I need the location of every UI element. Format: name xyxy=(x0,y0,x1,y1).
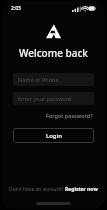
button[interactable]: Forgot password? xyxy=(45,111,94,120)
other: App logo xyxy=(45,23,62,40)
staticText: 2:03 xyxy=(11,5,21,12)
staticText: Forgot password? xyxy=(46,112,93,119)
staticText: Don't have an account? xyxy=(9,186,65,193)
staticText: Login xyxy=(46,132,62,140)
button[interactable]: Login xyxy=(13,128,94,143)
button[interactable]: Name or Phone xyxy=(13,73,94,86)
staticText: Register now xyxy=(65,186,98,193)
staticText: Enter your password xyxy=(18,95,72,102)
staticText: Name or Phone xyxy=(18,76,59,83)
other: Signal, Wi-Fi and battery status xyxy=(72,5,96,12)
button[interactable]: Don't have an account? xyxy=(2,184,105,195)
staticText: Welcome back xyxy=(2,46,105,60)
button[interactable]: Enter your password xyxy=(13,92,94,105)
